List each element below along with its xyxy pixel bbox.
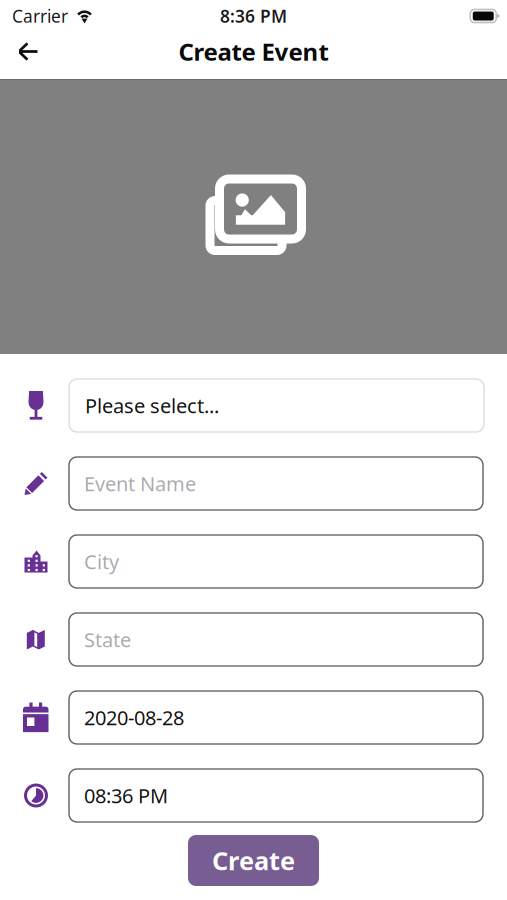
staticText: Carrier — [12, 4, 68, 27]
button[interactable]: Please select... — [69, 379, 484, 432]
staticText: State — [84, 626, 131, 653]
staticText: Create — [212, 844, 295, 877]
staticText: Event Name — [84, 470, 196, 497]
staticText: Please select... — [85, 392, 219, 419]
button[interactable]: 2020-08-28 — [69, 691, 483, 744]
button[interactable]: Event Name — [69, 457, 483, 510]
button[interactable]: 08:36 PM — [69, 769, 483, 822]
staticText: 2020-08-28 — [84, 704, 184, 731]
staticText: City — [84, 548, 119, 575]
button[interactable]: Back — [0, 28, 56, 75]
button[interactable]: State — [69, 613, 483, 666]
button[interactable]: Create — [188, 835, 319, 886]
staticText: 08:36 PM — [84, 782, 168, 809]
staticText: Create Event — [178, 36, 328, 67]
button[interactable]: City — [69, 535, 483, 588]
staticText: 8:36 PM — [220, 4, 287, 27]
